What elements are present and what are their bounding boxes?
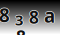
- staticText: 8: [0, 2, 10, 27]
- staticText: 8: [17, 25, 27, 35]
- staticText: a: [44, 3, 55, 28]
- staticText: 3: [16, 10, 24, 29]
- staticText: a: [44, 4, 55, 28]
- staticText: 8: [0, 2, 9, 27]
- staticText: 8: [0, 2, 10, 27]
- staticText: 8: [29, 5, 39, 28]
- staticText: 8: [16, 24, 26, 35]
- staticText: 3: [15, 11, 23, 30]
- staticText: 8: [15, 25, 25, 35]
- staticText: 3: [14, 10, 22, 29]
- staticText: 8: [30, 5, 40, 28]
- staticText: 8: [29, 6, 39, 29]
- staticText: 8: [16, 25, 26, 35]
- staticText: 8: [0, 3, 10, 28]
- staticText: 8: [28, 5, 38, 28]
- staticText: 8: [16, 26, 26, 35]
- staticText: 3: [15, 9, 23, 29]
- staticText: 8: [0, 2, 11, 27]
- staticText: a: [44, 2, 55, 27]
- staticText: a: [45, 3, 56, 28]
- staticText: a: [43, 3, 54, 28]
- staticText: 3: [15, 10, 23, 29]
- staticText: 8: [29, 5, 39, 28]
